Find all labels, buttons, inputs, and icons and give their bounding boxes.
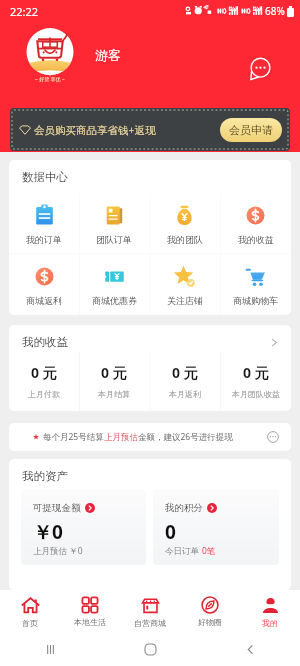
staticText: 我的资产 [22,469,68,483]
button[interactable]: 会员购买商品享省钱+返现 [10,108,290,151]
button[interactable]: 自营商城 [120,590,180,633]
staticText: 游客 [95,47,121,63]
button[interactable]: 我的团队 [149,193,220,254]
staticText: 0 [165,519,176,545]
staticText: 上月预估 ￥0 [33,545,83,557]
staticText: 上月预估 [104,432,138,443]
staticText: 今日订单 [165,545,202,557]
staticText: 商城返利 [26,295,62,306]
button[interactable]: 我的收益 [220,193,291,254]
button[interactable]: 每个月25号结算 [9,423,291,451]
staticText: 0 元 [31,363,57,382]
button[interactable]: 0 元 [79,351,149,411]
button[interactable]: Back [200,633,300,666]
staticText: 本月结算 [98,389,130,399]
button[interactable]: Messages [246,54,274,82]
staticText: 会员申请 [229,123,273,137]
staticText: 每个月25号结算 [43,431,104,443]
staticText: 团队订单 [96,234,132,245]
staticText: 68% [265,4,285,18]
staticText: 关注店铺 [167,295,203,306]
staticText: 自营商城 [134,618,166,628]
staticText: 数据中心 [22,170,68,184]
button[interactable]: 本地生活 [60,590,120,633]
staticText: 我的订单 [26,234,62,245]
staticText: 0笔 [202,545,216,557]
button[interactable]: 好物圈 [180,590,240,633]
button[interactable]: 团队订单 [79,193,149,254]
button[interactable]: 商城返利 [9,254,79,315]
button[interactable]: 我的 [240,590,300,633]
staticText: 本月团队收益 [232,389,280,399]
staticText: 好物圈 [198,617,222,627]
staticText: 商城优惠券 [92,295,137,306]
staticText: 我的积分 [165,502,203,514]
button[interactable]: 0 元 [9,351,79,411]
other: Help [267,431,279,443]
staticText: 本月返利 [169,389,201,399]
button[interactable]: 会员申请 [220,118,282,142]
button[interactable]: 可提现金额 [21,490,146,565]
button[interactable]: 0 元 [220,351,291,411]
staticText: 我的收益 [22,335,68,349]
staticText: 0 元 [101,363,127,382]
button[interactable]: Recents [0,633,100,666]
staticText: 金额，建议26号进行提现 [138,431,233,443]
staticText: 我的收益 [238,234,274,245]
staticText: 0 元 [172,363,198,382]
staticText: 会员购买商品享省钱+返现 [34,123,156,137]
button[interactable]: 我的收益 [9,325,291,351]
staticText: 上月付款 [28,389,60,399]
staticText: 22:22 [10,4,39,19]
button[interactable]: 商城购物车 [220,254,291,315]
staticText: ￥0 [33,519,63,545]
button[interactable]: 0 元 [149,351,220,411]
staticText: 0 元 [243,363,269,382]
staticText: 商城购物车 [233,295,278,306]
button[interactable]: Home [100,633,200,666]
button[interactable]: 关注店铺 [149,254,220,315]
button[interactable]: 首页 [0,590,60,633]
staticText: 首页 [22,618,38,628]
button[interactable]: 我的订单 [9,193,79,254]
staticText: ~ 好货 享优 ~ [35,76,65,83]
staticText: 本地生活 [74,617,106,627]
staticText: 可提现金额 [33,502,81,514]
staticText: 我的团队 [167,234,203,245]
button[interactable]: 我的积分 [153,490,279,565]
staticText: 我的 [262,618,278,628]
button[interactable]: 商城优惠券 [79,254,149,315]
